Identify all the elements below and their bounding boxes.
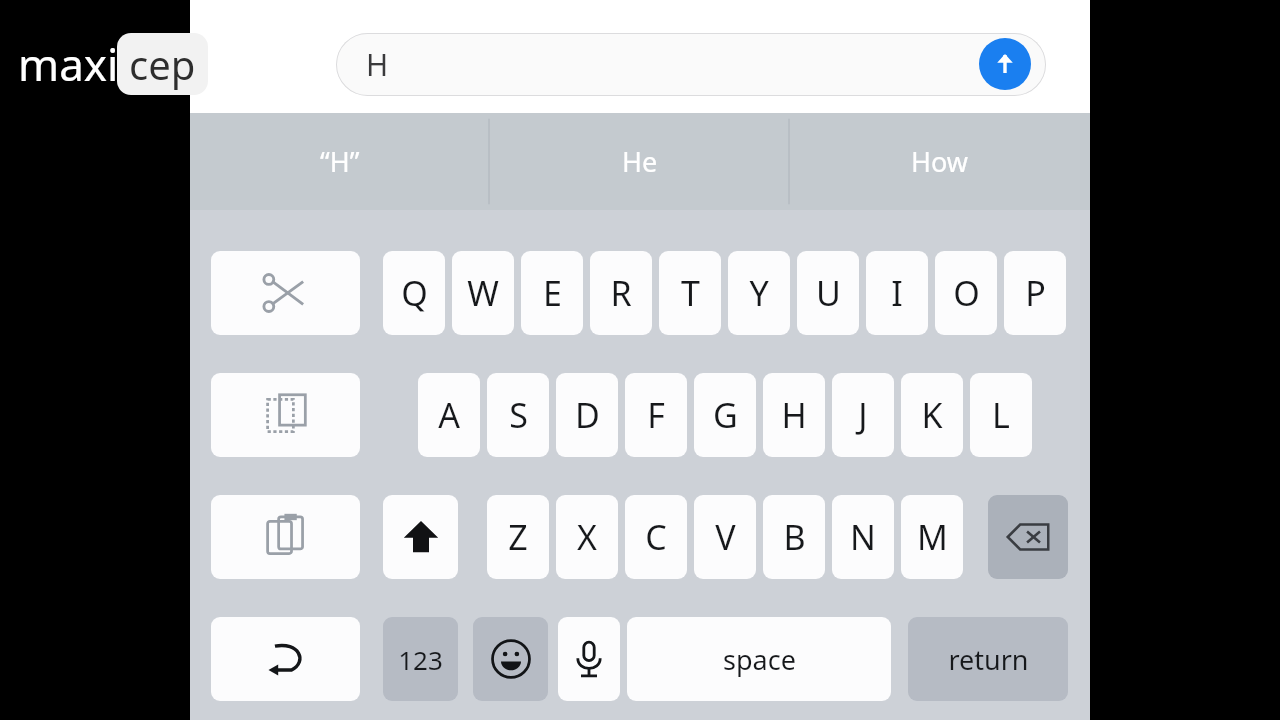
button[interactable]: J — [832, 373, 894, 457]
button[interactable]: H — [336, 33, 1046, 96]
button[interactable]: Undo — [211, 617, 360, 701]
staticText: N — [850, 514, 876, 560]
button[interactable]: Cut — [211, 251, 360, 335]
staticText: D — [575, 392, 600, 438]
staticText: W — [467, 270, 499, 316]
button[interactable]: Z — [487, 495, 549, 579]
button[interactable]: V — [694, 495, 756, 579]
button[interactable]: W — [452, 251, 514, 335]
staticText: space — [723, 641, 796, 678]
button[interactable]: space — [627, 617, 891, 701]
button[interactable]: M — [901, 495, 963, 579]
button[interactable]: D — [556, 373, 618, 457]
button[interactable]: B — [763, 495, 825, 579]
button[interactable]: X — [556, 495, 618, 579]
staticText: B — [783, 514, 806, 560]
button[interactable]: N — [832, 495, 894, 579]
staticText: U — [816, 270, 841, 316]
button[interactable]: Emoji — [473, 617, 548, 701]
staticText: K — [921, 392, 943, 438]
staticText: cep — [129, 37, 196, 91]
staticText: G — [713, 392, 738, 438]
button[interactable]: return — [908, 617, 1068, 701]
staticText: P — [1025, 270, 1046, 316]
button[interactable]: C — [625, 495, 687, 579]
staticText: How — [911, 143, 969, 180]
button[interactable]: F — [625, 373, 687, 457]
button[interactable]: Q — [383, 251, 445, 335]
button[interactable]: Shift — [383, 495, 458, 579]
button[interactable]: T — [659, 251, 721, 335]
staticText: T — [681, 270, 700, 316]
button[interactable]: How — [790, 113, 1090, 210]
staticText: V — [715, 514, 736, 560]
staticText: F — [647, 392, 665, 438]
staticText: He — [622, 143, 658, 180]
button[interactable]: I — [866, 251, 928, 335]
button[interactable]: O — [935, 251, 997, 335]
button[interactable]: K — [901, 373, 963, 457]
staticText: L — [992, 392, 1010, 438]
staticText: A — [438, 392, 460, 438]
staticText: maxi — [18, 34, 119, 94]
staticText: H — [366, 44, 389, 85]
button[interactable]: Backspace — [988, 495, 1068, 579]
button[interactable]: E — [521, 251, 583, 335]
button[interactable]: G — [694, 373, 756, 457]
staticText: return — [948, 641, 1029, 678]
button[interactable]: Voice input — [558, 617, 620, 701]
staticText: M — [917, 514, 948, 560]
button[interactable]: 123 — [383, 617, 458, 701]
staticText: I — [891, 270, 903, 316]
staticText: S — [509, 392, 528, 438]
button[interactable]: R — [590, 251, 652, 335]
staticText: C — [645, 514, 667, 560]
button[interactable]: P — [1004, 251, 1066, 335]
staticText: Z — [508, 514, 528, 560]
staticText: J — [858, 392, 868, 438]
staticText: R — [610, 270, 632, 316]
button[interactable]: Paste — [211, 373, 360, 457]
button[interactable]: Send — [979, 38, 1031, 90]
button[interactable]: U — [797, 251, 859, 335]
button[interactable]: Copy — [211, 495, 360, 579]
staticText: E — [543, 270, 562, 316]
staticText: Y — [749, 270, 769, 316]
button[interactable]: L — [970, 373, 1032, 457]
staticText: “H” — [320, 143, 360, 180]
staticText: O — [953, 270, 980, 316]
staticText: H — [781, 392, 807, 438]
button[interactable]: He — [490, 113, 790, 210]
button[interactable]: H — [763, 373, 825, 457]
staticText: 123 — [398, 642, 443, 677]
staticText: X — [577, 514, 597, 560]
button[interactable]: “H” — [190, 113, 490, 210]
button[interactable]: A — [418, 373, 480, 457]
button[interactable]: Y — [728, 251, 790, 335]
staticText: Q — [401, 270, 428, 316]
button[interactable]: S — [487, 373, 549, 457]
